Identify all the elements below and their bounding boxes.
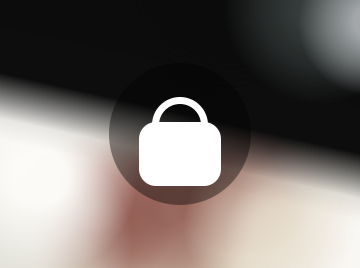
button[interactable]: Unlock bbox=[109, 63, 251, 205]
